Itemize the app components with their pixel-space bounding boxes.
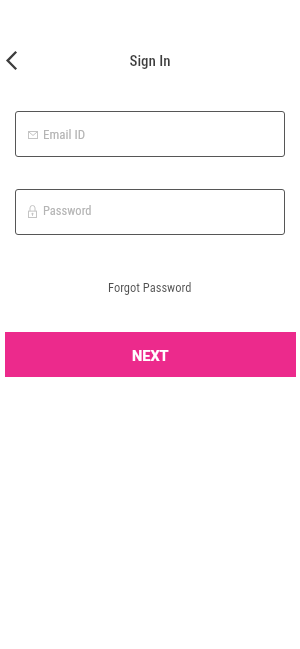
button[interactable]: Password: [15, 189, 285, 235]
staticText: Password: [43, 203, 92, 218]
button[interactable]: Back: [0, 44, 30, 78]
button[interactable]: Forgot Password: [98, 275, 202, 300]
staticText: NEXT: [132, 348, 169, 365]
button[interactable]: NEXT: [5, 332, 296, 377]
staticText: Sign In: [0, 52, 300, 70]
button[interactable]: Email ID: [15, 111, 285, 157]
staticText: Email ID: [43, 127, 86, 142]
staticText: Forgot Password: [108, 280, 192, 295]
